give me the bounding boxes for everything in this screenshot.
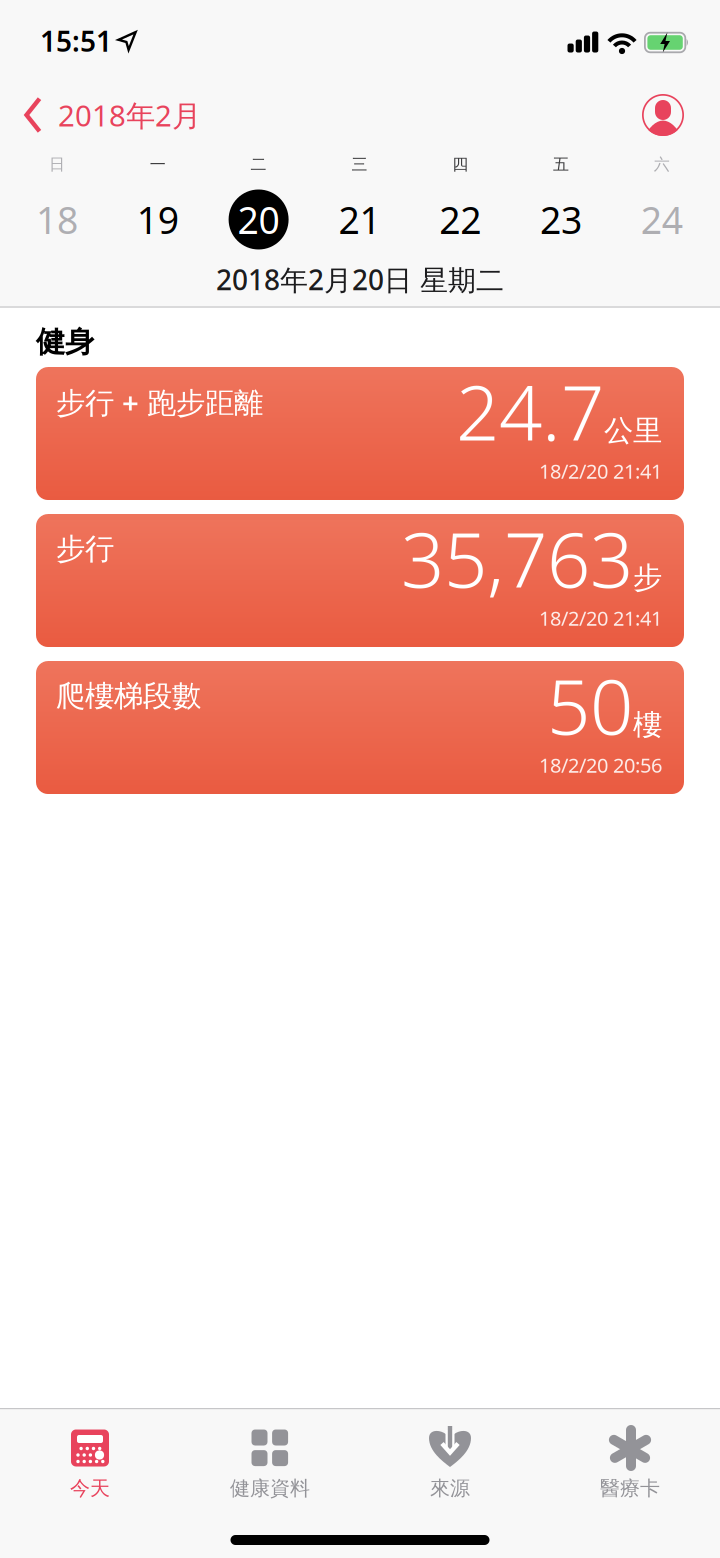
button[interactable]: 健康資料 (180, 1428, 360, 1501)
staticText: 步 (633, 560, 662, 596)
button[interactable]: 18 (21, 189, 93, 249)
button[interactable]: 2018年2月 (24, 95, 201, 134)
staticText: 步行 (56, 531, 114, 567)
staticText: 爬樓梯段數 (56, 678, 201, 714)
button[interactable]: 步行 (36, 514, 684, 647)
button[interactable]: 22 (424, 189, 496, 249)
button[interactable] (642, 94, 684, 136)
button[interactable]: 爬樓梯段數 (36, 661, 684, 794)
staticText: 24.7 (456, 361, 604, 461)
staticText: 24 (641, 195, 683, 244)
staticText: 35,763 (401, 508, 633, 608)
staticText: 2018年2月 (58, 95, 201, 134)
staticText: 樓 (633, 707, 662, 743)
button[interactable]: 步行 + 跑步距離 (36, 367, 684, 500)
button[interactable]: 23 (525, 189, 597, 249)
button[interactable]: 20 (229, 189, 289, 249)
staticText: 18/2/20 20:56 (539, 752, 662, 778)
staticText: 22 (439, 195, 481, 244)
staticText: 15:51 (40, 22, 112, 60)
button[interactable]: 醫療卡 (540, 1428, 720, 1501)
staticText: 醫療卡 (600, 1476, 660, 1501)
staticText: 21 (338, 195, 380, 244)
button[interactable]: 今天 (0, 1428, 180, 1501)
staticText: 18/2/20 21:41 (539, 605, 662, 631)
staticText: 三 (351, 155, 367, 174)
button[interactable]: 21 (323, 189, 395, 249)
staticText: 四 (452, 155, 468, 174)
staticText: 來源 (430, 1476, 470, 1501)
staticText: 六 (654, 155, 670, 174)
staticText: 今天 (70, 1476, 110, 1501)
staticText: 18 (36, 195, 78, 244)
staticText: 日 (49, 155, 65, 174)
button[interactable]: 24 (626, 189, 698, 249)
staticText: 20 (238, 195, 280, 244)
staticText: 步行 + 跑步距離 (56, 383, 263, 422)
staticText: 健身 (36, 324, 94, 360)
staticText: 23 (540, 195, 582, 244)
staticText: 一 (150, 155, 166, 174)
staticText: 2018年2月20日 星期二 (216, 261, 504, 298)
staticText: 五 (553, 155, 569, 174)
button[interactable]: 來源 (360, 1428, 540, 1501)
button[interactable]: 19 (122, 189, 194, 249)
staticText: 二 (251, 155, 267, 174)
staticText: 公里 (604, 413, 662, 449)
staticText: 18/2/20 21:41 (539, 458, 662, 484)
staticText: 19 (137, 195, 179, 244)
staticText: 健康資料 (230, 1476, 310, 1501)
staticText: 50 (547, 655, 633, 755)
